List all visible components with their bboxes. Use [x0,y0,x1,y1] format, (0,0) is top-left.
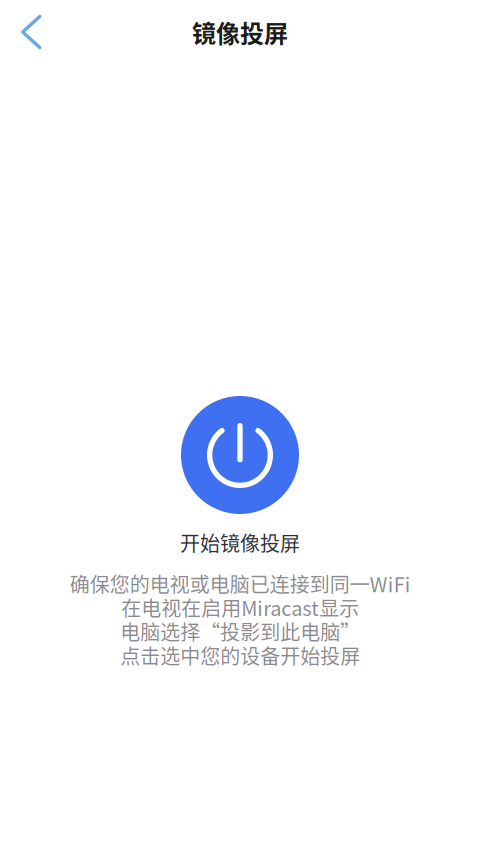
staticText: 确保您的电视或电脑已连接到同一WiFi 在电视在启用Miracast显示 电脑选… [69,569,410,670]
staticText: 镜像投屏 [192,15,288,49]
button[interactable]: Back [0,0,58,64]
button[interactable]: 开始镜像投屏 [181,396,299,514]
staticText: 开始镜像投屏 [180,528,300,557]
